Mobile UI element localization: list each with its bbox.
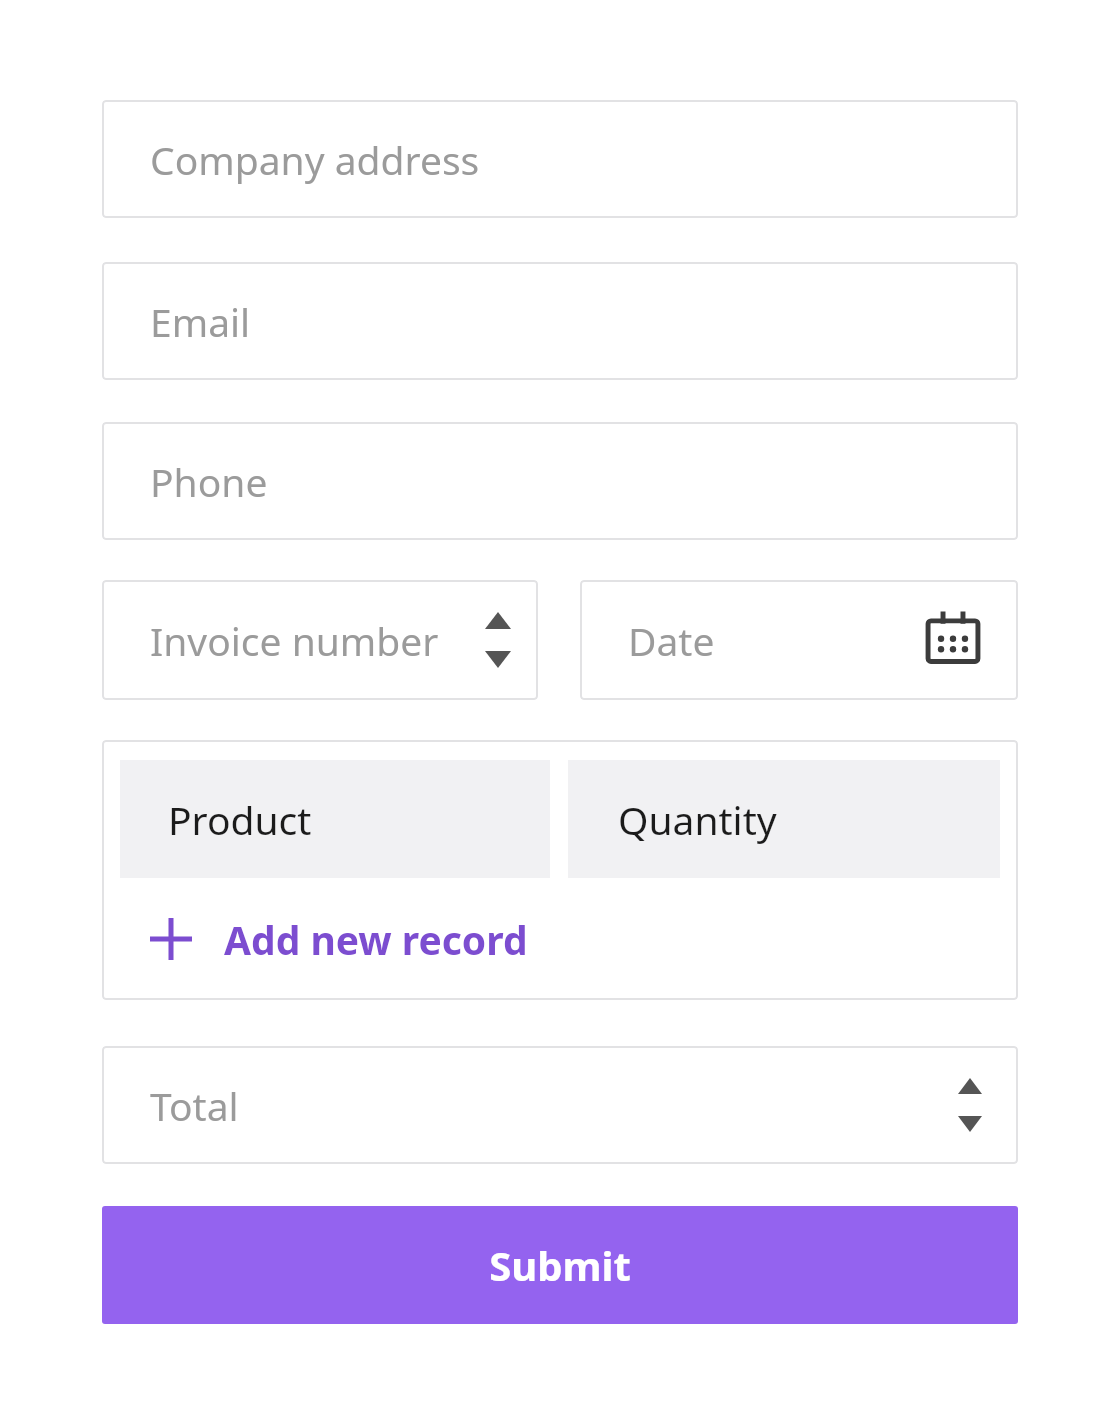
staticText: Invoice number [150, 614, 439, 667]
button[interactable]: Invoice number [102, 580, 538, 700]
button[interactable]: Product [120, 760, 550, 878]
button[interactable]: Quantity [568, 760, 1000, 878]
staticText: Quantity [618, 793, 777, 846]
staticText: Add new record [224, 913, 528, 966]
button[interactable]: Pick date [924, 611, 982, 669]
button[interactable]: Phone [102, 422, 1018, 540]
button[interactable]: Email [102, 262, 1018, 380]
staticText: Product [168, 793, 312, 846]
staticText: Total [150, 1079, 239, 1132]
button[interactable]: Date [580, 580, 1018, 700]
staticText: Date [628, 614, 715, 667]
button[interactable]: Company address [102, 100, 1018, 218]
staticText: Phone [150, 455, 268, 508]
staticText: Submit [489, 1238, 631, 1292]
button[interactable]: Add new record [120, 878, 528, 1000]
button[interactable]: Total [102, 1046, 1018, 1164]
staticText: Company address [150, 133, 480, 186]
staticText: Email [150, 295, 251, 348]
button[interactable]: Submit [102, 1206, 1018, 1324]
